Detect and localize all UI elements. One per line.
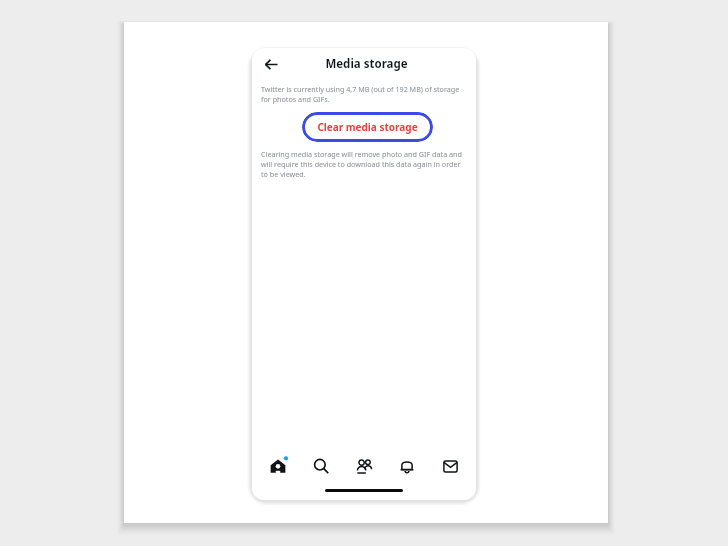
button[interactable]: Search	[304, 449, 338, 483]
staticText: Clearing media storage will remove photo…	[261, 149, 468, 179]
button[interactable]: Communities	[347, 449, 381, 483]
button[interactable]: Clear media storage	[302, 112, 433, 142]
button[interactable]: Messages	[433, 449, 467, 483]
button[interactable]: Notifications	[390, 449, 424, 483]
button[interactable]: Home	[261, 449, 295, 483]
staticText: Twitter is currently using 4,7 MB (out o…	[261, 84, 468, 104]
staticText: Clear media storage	[317, 120, 418, 134]
button[interactable]: Back	[258, 51, 284, 77]
staticText: Media storage	[325, 56, 408, 72]
